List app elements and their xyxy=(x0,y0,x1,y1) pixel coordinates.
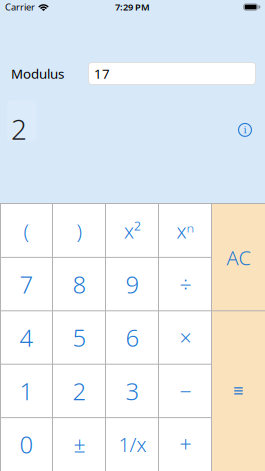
button[interactable]: i xyxy=(238,123,252,137)
button[interactable]: 5 xyxy=(53,311,106,364)
staticText: 4 xyxy=(19,322,33,353)
staticText: 1 xyxy=(19,375,33,407)
button[interactable]: × xyxy=(159,311,212,364)
staticText: 3 xyxy=(125,375,139,407)
staticText: 6 xyxy=(125,322,139,353)
staticText: 8 xyxy=(72,268,86,300)
button[interactable]: 1 xyxy=(0,364,53,418)
staticText: 2 xyxy=(11,110,27,148)
button[interactable]: 6 xyxy=(106,311,159,364)
button[interactable]: AC xyxy=(212,204,265,311)
staticText: ( xyxy=(23,217,29,244)
staticText: ) xyxy=(76,217,82,244)
button[interactable]: + xyxy=(159,418,212,471)
staticText: − xyxy=(179,377,191,405)
button[interactable]: 9 xyxy=(106,257,159,311)
staticText: 2 xyxy=(72,375,86,407)
staticText: ± xyxy=(73,430,85,458)
staticText: 7 xyxy=(19,268,33,300)
staticText: x² xyxy=(124,217,141,244)
button[interactable]: 1/x xyxy=(106,418,159,471)
button[interactable]: ( xyxy=(0,204,53,257)
staticText: × xyxy=(179,323,191,352)
staticText: 9 xyxy=(125,268,139,300)
staticText: i xyxy=(243,124,246,136)
button[interactable]: ± xyxy=(53,418,106,471)
staticText: Carrier xyxy=(5,1,35,13)
button[interactable]: 4 xyxy=(0,311,53,364)
button[interactable] xyxy=(212,311,265,471)
button[interactable]: ) xyxy=(53,204,106,257)
button[interactable]: − xyxy=(159,364,212,418)
button[interactable]: ÷ xyxy=(159,257,212,311)
staticText: xⁿ xyxy=(176,217,194,244)
staticText: 7:29 PM xyxy=(115,1,150,13)
button[interactable]: 8 xyxy=(53,257,106,311)
staticText: Modulus xyxy=(11,65,64,82)
button[interactable]: 2 xyxy=(53,364,106,418)
button[interactable]: xⁿ xyxy=(159,204,212,257)
button[interactable]: 17 xyxy=(88,62,256,85)
button[interactable]: 3 xyxy=(106,364,159,418)
staticText: 1/x xyxy=(118,431,146,458)
staticText: 0 xyxy=(19,428,33,460)
staticText: ÷ xyxy=(179,270,191,298)
staticText: AC xyxy=(226,244,250,271)
button[interactable]: 7 xyxy=(0,257,53,311)
staticText: + xyxy=(179,430,191,458)
staticText: 17 xyxy=(94,65,110,82)
button[interactable]: 0 xyxy=(0,418,53,471)
button[interactable]: x² xyxy=(106,204,159,257)
staticText: 5 xyxy=(72,322,86,353)
